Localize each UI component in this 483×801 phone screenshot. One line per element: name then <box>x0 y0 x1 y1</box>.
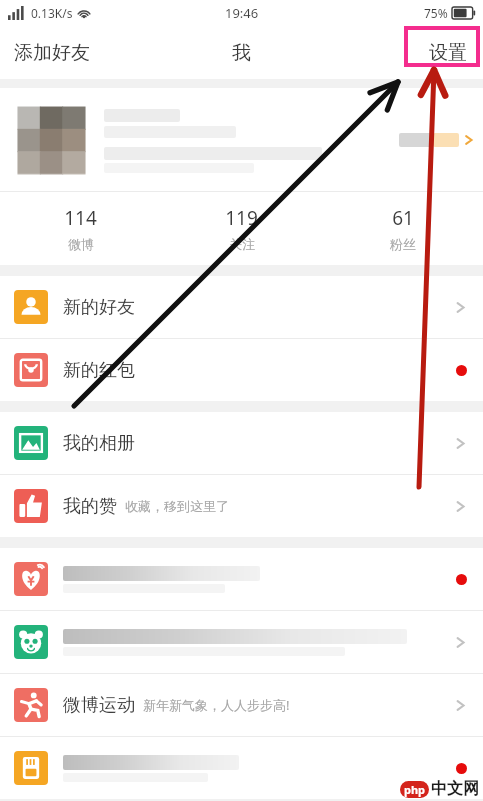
staticText: 微博 <box>68 236 94 252</box>
button[interactable]: 114 <box>0 192 161 265</box>
staticText: 添加好友 <box>14 41 90 65</box>
staticText: 关注 <box>229 236 255 252</box>
staticText: 新年新气象，人人步步高! <box>143 696 290 714</box>
button[interactable]: 119 <box>161 192 322 265</box>
button[interactable]: 我的赞 <box>0 475 483 537</box>
button[interactable]: 61 <box>322 192 483 265</box>
button[interactable]: 我的相册 <box>0 412 483 474</box>
staticText: 我 <box>232 41 251 65</box>
button[interactable]: 新的红包 <box>0 339 483 401</box>
button[interactable] <box>0 737 483 799</box>
staticText: 19:46 <box>225 4 259 22</box>
staticText: 我的相册 <box>63 432 135 455</box>
button[interactable] <box>0 611 483 673</box>
button[interactable] <box>0 548 483 610</box>
button[interactable]: 添加好友 <box>0 33 104 73</box>
staticText: 微博运动 <box>63 694 135 717</box>
staticText: 0.13K/s <box>31 5 73 21</box>
staticText: 收藏，移到这里了 <box>125 498 229 514</box>
staticText: php <box>404 782 426 797</box>
staticText: 119 <box>225 205 258 231</box>
button[interactable] <box>0 88 483 191</box>
staticText: 114 <box>64 205 97 231</box>
staticText: 新的好友 <box>63 296 135 319</box>
button[interactable]: 微博运动 <box>0 674 483 736</box>
staticText: 我的赞 <box>63 495 117 518</box>
staticText: 新的红包 <box>63 359 135 382</box>
staticText: 中文网 <box>431 779 479 799</box>
staticText: 75% <box>424 5 448 21</box>
button[interactable]: 新的好友 <box>0 276 483 338</box>
staticText: 61 <box>392 205 414 231</box>
staticText: 设置 <box>429 41 467 65</box>
button[interactable]: 设置 <box>413 33 483 73</box>
staticText: 粉丝 <box>390 236 416 252</box>
